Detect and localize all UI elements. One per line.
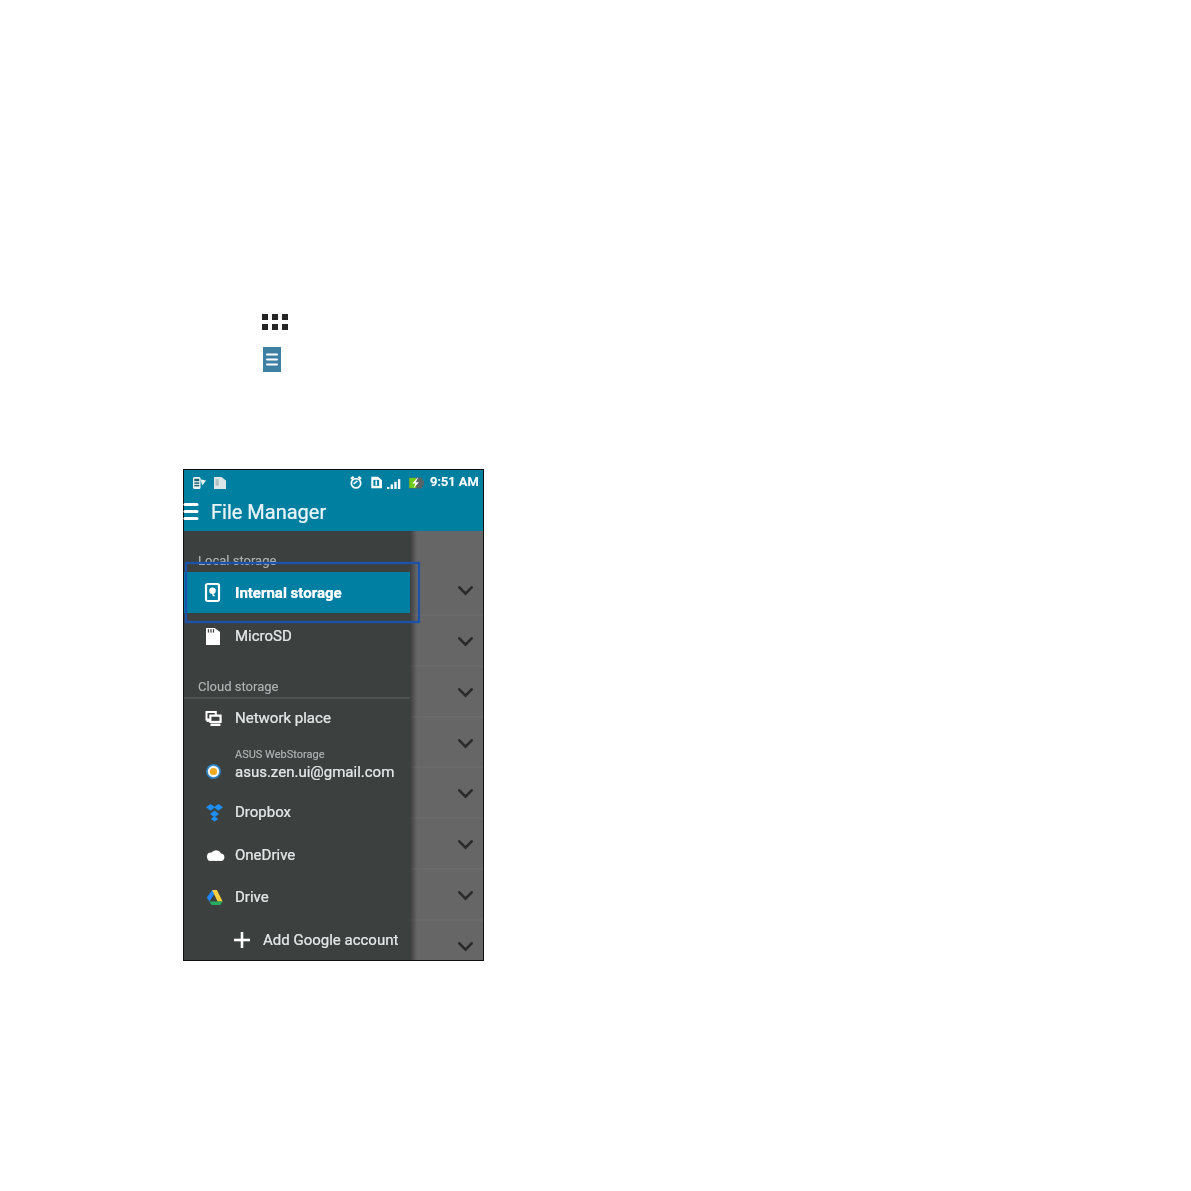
button[interactable]: Add Google account — [184, 919, 410, 961]
staticText: asus.zen.ui@gmail.com — [235, 763, 395, 781]
button[interactable]: Drive — [184, 876, 410, 918]
staticText: Drive — [235, 888, 269, 906]
button[interactable]: Open navigation drawer — [184, 492, 208, 531]
staticText: Cloud storage — [198, 679, 279, 694]
button[interactable]: Internal storage — [184, 572, 410, 613]
button[interactable]: Network place — [184, 697, 410, 739]
staticText: Network place — [235, 709, 331, 727]
staticText: Add Google account — [263, 931, 399, 949]
staticText: MicroSD — [235, 627, 292, 645]
staticText: 9:51 AM — [430, 474, 479, 489]
button[interactable]: OneDrive — [184, 834, 410, 876]
staticText: File Manager — [211, 500, 327, 523]
staticText: Dropbox — [235, 803, 292, 821]
button[interactable]: Dropbox — [184, 791, 410, 833]
button[interactable]: ASUS WebStorage — [184, 739, 410, 789]
button[interactable]: MicroSD — [184, 615, 410, 657]
staticText: OneDrive — [235, 846, 296, 864]
staticText: Local storage — [198, 553, 277, 568]
staticText: Internal storage — [235, 584, 342, 602]
staticText: ASUS WebStorage — [235, 748, 325, 761]
